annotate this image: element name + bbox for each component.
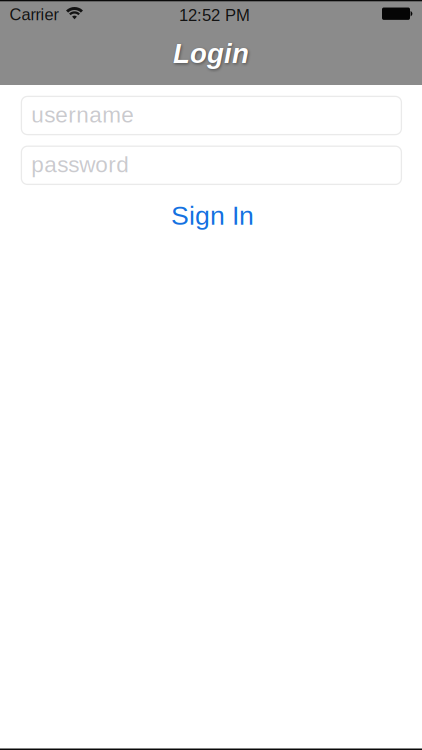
staticText: Sign In: [171, 201, 254, 230]
staticText: Carrier: [10, 5, 59, 24]
staticText: Login: [173, 38, 249, 69]
staticText: 12:52 PM: [179, 6, 250, 25]
button[interactable]: Sign In: [1, 198, 422, 232]
staticText: password: [31, 152, 129, 177]
button[interactable]: Username: [21, 96, 401, 135]
staticText: username: [31, 102, 134, 127]
button[interactable]: Password: [21, 146, 401, 184]
